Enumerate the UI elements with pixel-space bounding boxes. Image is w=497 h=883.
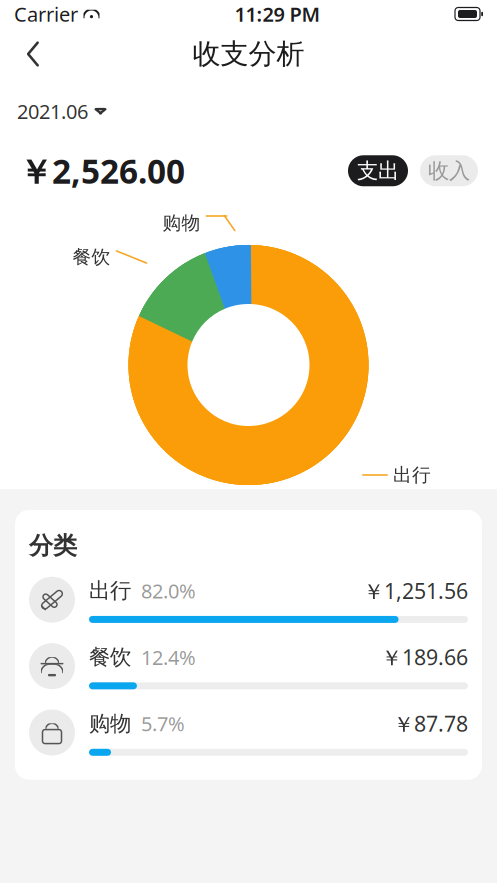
staticText: 餐饮 — [72, 245, 110, 268]
staticText: ￥189.66 — [381, 643, 468, 671]
staticText: 收支分析 — [192, 37, 304, 71]
staticText: 购物 — [89, 710, 131, 737]
staticText: 收入 — [428, 158, 470, 184]
button[interactable]: 支出 — [348, 155, 408, 186]
staticText: 分类 — [29, 531, 77, 560]
staticText: 2021.06 — [17, 98, 88, 125]
button[interactable]: 餐饮 — [29, 643, 468, 689]
button[interactable]: 2021.06 — [17, 92, 106, 131]
button[interactable]: 出行 — [29, 576, 468, 623]
staticText: 5.7% — [131, 710, 185, 737]
staticText: ￥87.78 — [393, 709, 468, 738]
staticText: 12.4% — [131, 644, 196, 670]
button[interactable]: 购物 — [29, 709, 468, 756]
staticText: 出行 — [89, 578, 131, 604]
staticText: 出行 — [393, 463, 431, 486]
staticText: ￥1,251.56 — [363, 576, 468, 605]
staticText: 购物 — [162, 211, 200, 234]
staticText: 餐饮 — [89, 644, 131, 670]
staticText: 82.0% — [131, 577, 196, 604]
staticText: Carrier — [14, 1, 78, 27]
staticText: ￥2,526.00 — [19, 149, 185, 193]
staticText: 支出 — [357, 158, 399, 184]
button[interactable]: 收入 — [420, 155, 478, 186]
button[interactable]: Back — [10, 31, 56, 77]
staticText: 11:29 PM — [234, 1, 320, 27]
